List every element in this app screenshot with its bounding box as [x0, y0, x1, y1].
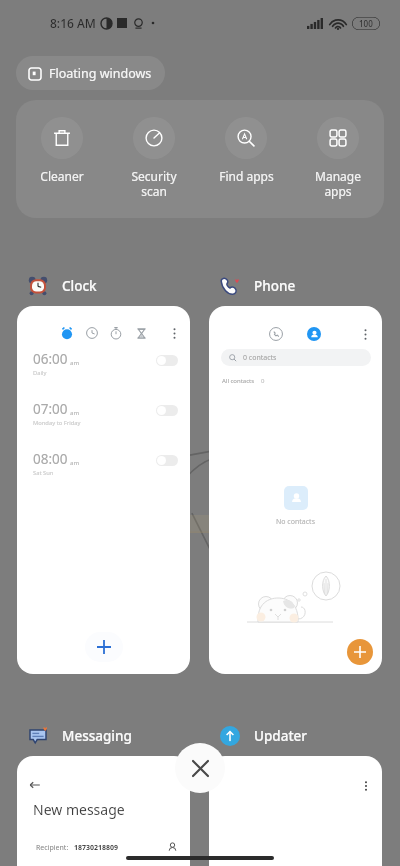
staticText: Cleaner	[40, 168, 84, 184]
button[interactable]: 0 contacts	[221, 349, 371, 366]
button[interactable]: Manage apps	[292, 100, 384, 218]
button[interactable]: Add alarm	[85, 632, 123, 662]
button[interactable]: Back	[24, 774, 45, 795]
staticText: Sat Sun	[33, 469, 54, 477]
staticText: New message	[33, 800, 125, 819]
staticText: Recipient:	[36, 843, 69, 853]
button[interactable]: Find apps	[200, 100, 292, 218]
button[interactable]: Back	[17, 756, 190, 866]
staticText: 06:00	[33, 350, 68, 368]
staticText: 07:00	[33, 400, 68, 418]
button[interactable]: Security scan	[108, 100, 200, 218]
button[interactable]: Add contact	[347, 639, 373, 665]
button[interactable]: Messaging	[28, 724, 132, 748]
button[interactable]: 06:00	[17, 306, 190, 674]
staticText: 08:00	[33, 450, 68, 468]
button[interactable]: Clock	[28, 274, 97, 298]
staticText: Daily	[33, 369, 47, 377]
staticText: am	[70, 359, 80, 367]
staticText: Phone	[254, 277, 296, 295]
button[interactable]	[209, 756, 382, 866]
staticText: Floating windows	[49, 65, 152, 82]
staticText: Find apps	[219, 168, 274, 184]
button[interactable]: 07:00	[17, 396, 190, 434]
button[interactable]: Phone	[220, 274, 296, 298]
staticText: Manage apps	[315, 168, 361, 199]
button[interactable]: Close	[175, 743, 225, 793]
staticText: 100	[359, 18, 373, 29]
staticText: No contacts	[276, 517, 315, 527]
button[interactable]: Cleaner	[16, 100, 108, 218]
staticText: 0	[261, 377, 265, 385]
staticText: am	[70, 409, 80, 417]
staticText: All contacts	[222, 377, 255, 385]
button[interactable]: 06:00	[17, 346, 190, 384]
staticText: 8:16 AM	[50, 15, 96, 31]
staticText: am	[70, 459, 80, 467]
button[interactable]: Floating windows	[16, 56, 165, 90]
staticText: Updater	[254, 727, 308, 745]
button[interactable]: 08:00	[17, 446, 190, 484]
staticText: Monday to Friday	[33, 419, 81, 427]
button[interactable]: Updater	[220, 724, 308, 748]
staticText: Messaging	[62, 727, 132, 745]
button[interactable]: 0 contacts	[209, 306, 382, 674]
staticText: Security scan	[131, 168, 177, 199]
staticText: 18730218809	[74, 843, 119, 853]
staticText: 0 contacts	[243, 353, 277, 363]
staticText: Clock	[62, 277, 97, 295]
